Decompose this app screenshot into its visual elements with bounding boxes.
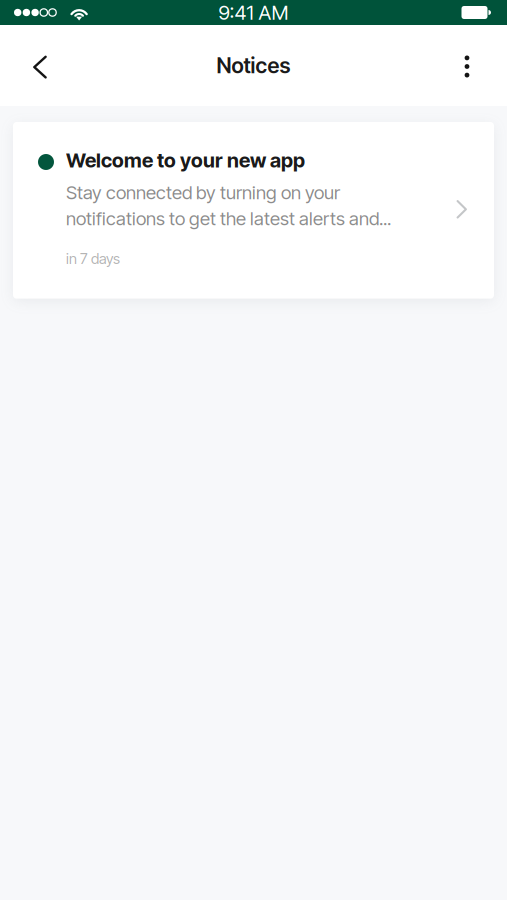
button[interactable]: Back: [16, 41, 64, 89]
button[interactable]: Welcome to your new app: [13, 122, 494, 299]
staticText: Notices: [216, 53, 290, 78]
button[interactable]: More options: [443, 41, 491, 89]
staticText: Welcome to your new app: [66, 148, 305, 172]
staticText: Stay connected by turning on your notifi…: [66, 181, 391, 230]
staticText: in 7 days: [66, 250, 120, 268]
staticText: 9:41 AM: [218, 0, 288, 25]
